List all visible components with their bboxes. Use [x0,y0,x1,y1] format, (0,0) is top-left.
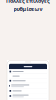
staticText: ρυθμίσεων [13,5,42,12]
button[interactable]: Setting [8,99,51,100]
staticText: Πολλές επιλογές [6,0,50,4]
button[interactable]: Setting [8,93,51,99]
button[interactable]: Setting [8,79,51,83]
button[interactable]: Setting [8,89,51,93]
button[interactable]: Setting [6,83,52,89]
button[interactable]: Setting [8,69,51,74]
button[interactable]: Setting [8,74,51,79]
